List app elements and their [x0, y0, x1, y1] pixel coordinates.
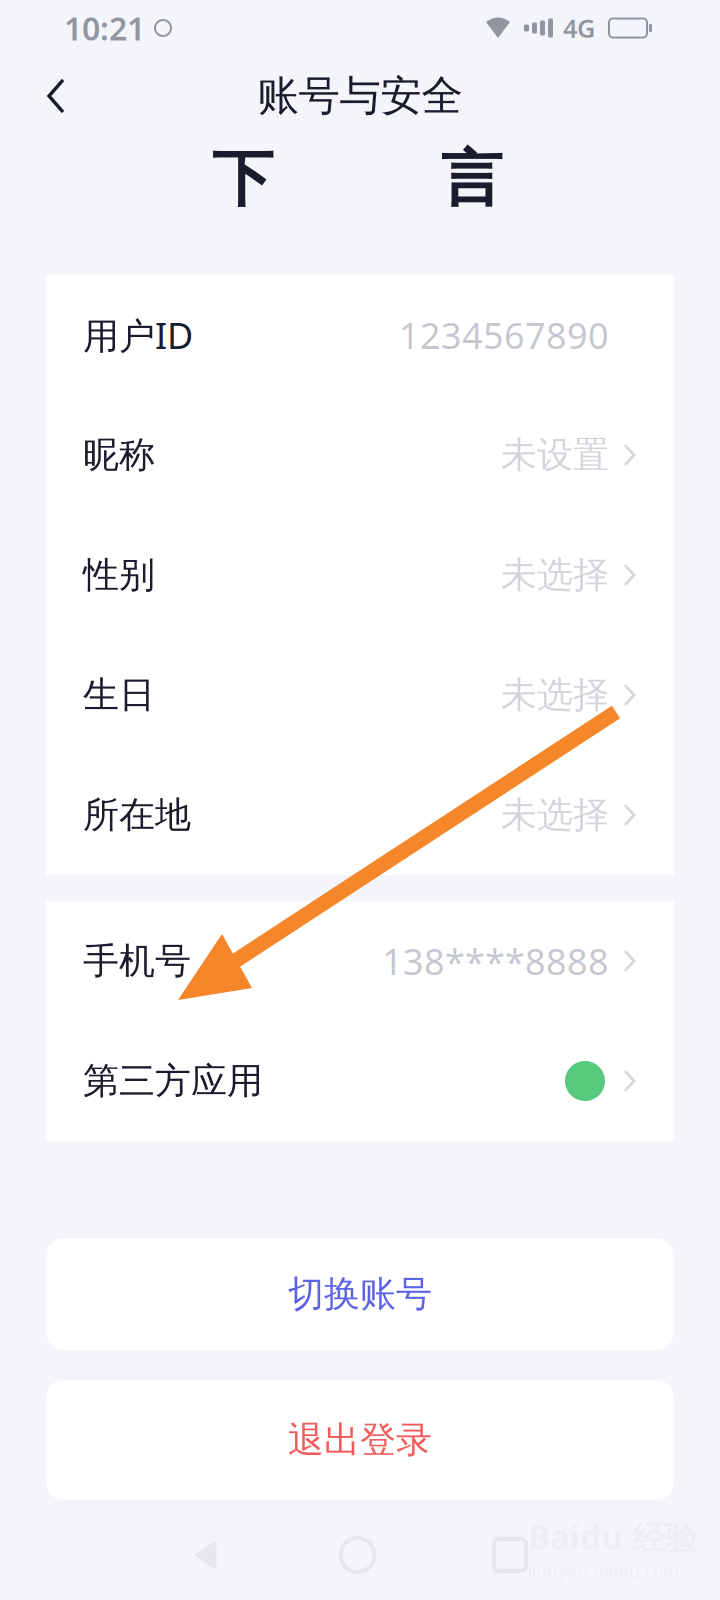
- staticText: 未选择: [501, 553, 609, 597]
- staticText: 4G: [563, 11, 595, 45]
- staticText: 10:21: [64, 7, 145, 49]
- button[interactable]: 性别: [46, 515, 674, 635]
- staticText: 第三方应用: [83, 1059, 263, 1103]
- staticText: 账号与安全: [257, 71, 462, 121]
- button[interactable]: 退出登录: [46, 1380, 674, 1500]
- button[interactable]: 第三方应用: [46, 1021, 674, 1141]
- staticText: 1234567890: [399, 311, 609, 359]
- button[interactable]: 返回: [20, 58, 92, 134]
- staticText: 生日: [83, 673, 155, 717]
- staticText: 昵称: [83, 433, 155, 477]
- button[interactable]: 昵称: [46, 395, 674, 515]
- staticText: 138****8888: [382, 937, 609, 985]
- staticText: 性别: [83, 553, 155, 597]
- staticText: 所在地: [83, 793, 191, 837]
- staticText: 未选择: [501, 793, 609, 837]
- button[interactable]: 手机号: [46, 901, 674, 1021]
- staticText: 退出登录: [288, 1418, 432, 1462]
- staticText: 未设置: [501, 433, 609, 477]
- button[interactable]: 切换账号: [46, 1238, 674, 1350]
- staticText: 用户ID: [83, 311, 193, 359]
- button[interactable]: 最近任务: [450, 1515, 570, 1595]
- staticText: 切换账号: [288, 1272, 432, 1316]
- button[interactable]: 用户ID: [46, 275, 674, 395]
- staticText: 未选择: [501, 673, 609, 717]
- staticText: 手机号: [83, 939, 191, 983]
- button[interactable]: 生日: [46, 635, 674, 755]
- staticText: 言: [441, 141, 502, 217]
- staticText: 下: [212, 141, 273, 217]
- button[interactable]: 所在地: [46, 755, 674, 875]
